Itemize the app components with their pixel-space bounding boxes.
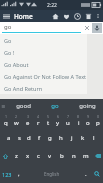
staticText: n <box>72 152 76 160</box>
button[interactable]: History <box>72 10 83 22</box>
staticText: . <box>85 170 87 178</box>
staticText: f <box>38 134 41 142</box>
button[interactable]: Space <box>23 167 81 181</box>
staticText: English <box>44 171 60 177</box>
staticText: d <box>27 134 31 142</box>
staticText: , <box>18 170 20 178</box>
button[interactable]: Delete <box>83 10 94 22</box>
staticText: 7 <box>67 114 70 119</box>
staticText: y <box>56 119 60 127</box>
button[interactable]: Clear query <box>82 22 92 34</box>
button[interactable]: go <box>0 22 82 34</box>
staticText: c <box>37 152 40 160</box>
button[interactable]: Go And Return <box>0 82 87 94</box>
staticText: 2 <box>15 114 18 119</box>
staticText: 6 <box>57 114 60 119</box>
button[interactable]: Go <box>0 34 87 46</box>
button[interactable]: Home <box>50 10 61 22</box>
staticText: z <box>15 152 18 160</box>
button[interactable]: going <box>71 99 103 112</box>
button[interactable]: More options <box>94 10 102 22</box>
staticText: 1 <box>5 114 8 119</box>
button[interactable]: Backspace <box>92 147 103 165</box>
staticText: j <box>71 134 73 142</box>
button[interactable]: 6 <box>53 112 63 129</box>
button[interactable]: k <box>77 129 88 147</box>
button[interactable]: z <box>11 147 22 165</box>
button[interactable]: 3 <box>22 112 33 129</box>
button[interactable]: l <box>88 129 99 147</box>
staticText: g <box>48 134 52 142</box>
staticText: a <box>7 134 11 142</box>
staticText: going <box>79 102 96 110</box>
staticText: Go ! <box>4 49 15 56</box>
staticText: p <box>96 119 100 127</box>
staticText: t <box>47 119 50 127</box>
staticText: 5 <box>47 114 50 119</box>
button[interactable]: d <box>24 129 34 147</box>
button[interactable]: 8 <box>73 112 83 129</box>
button[interactable]: 123 <box>0 165 14 183</box>
staticText: h <box>59 134 63 142</box>
button[interactable]: Shift <box>0 147 11 165</box>
staticText: b <box>60 152 64 160</box>
staticText: k <box>81 134 85 142</box>
staticText: m <box>83 152 89 160</box>
staticText: x <box>26 152 30 160</box>
staticText: 123 <box>2 171 12 178</box>
button[interactable]: 0 <box>93 112 103 129</box>
button[interactable]: 5 <box>43 112 53 129</box>
staticText: 4 <box>37 114 40 119</box>
button[interactable]: Go ! <box>0 46 87 58</box>
staticText: good <box>16 102 31 110</box>
staticText: Go <box>4 37 12 44</box>
button[interactable]: x <box>22 147 33 165</box>
button[interactable]: g <box>44 129 55 147</box>
staticText: go <box>4 23 12 31</box>
button[interactable]: m <box>80 147 92 165</box>
staticText: Go Against Or Not Follow A Text <box>4 73 87 80</box>
staticText: u <box>66 119 70 127</box>
staticText: e <box>26 119 30 127</box>
button[interactable]: a <box>4 129 14 147</box>
button[interactable]: c <box>33 147 44 165</box>
button[interactable]: Comma <box>14 165 23 183</box>
staticText: r <box>37 119 40 127</box>
staticText: 0 <box>97 114 100 119</box>
button[interactable]: h <box>55 129 66 147</box>
button[interactable]: 9 <box>83 112 93 129</box>
staticText: v <box>48 152 52 160</box>
button[interactable]: 4 <box>33 112 43 129</box>
button[interactable]: good <box>7 99 39 112</box>
staticText: ≡ <box>1 103 6 109</box>
staticText: 2:22 <box>47 2 57 9</box>
staticText: Home <box>14 12 33 21</box>
button[interactable]: Period <box>81 165 90 183</box>
staticText: i <box>78 119 80 127</box>
button[interactable]: v <box>44 147 56 165</box>
staticText: s <box>18 134 21 142</box>
staticText: Go And Return <box>4 85 43 92</box>
button[interactable]: s <box>14 129 24 147</box>
button[interactable]: 2 <box>11 112 22 129</box>
button[interactable]: Search <box>90 165 103 183</box>
staticText: go <box>51 102 59 110</box>
button[interactable]: 1 <box>0 112 11 129</box>
button[interactable]: n <box>68 147 80 165</box>
button[interactable]: Favorites <box>61 10 72 22</box>
button[interactable]: Voice search <box>92 23 102 33</box>
button[interactable]: Navigation drawer <box>0 10 12 22</box>
button[interactable]: go <box>39 99 71 112</box>
staticText: 3 <box>27 114 30 119</box>
button[interactable]: f <box>34 129 44 147</box>
button[interactable]: 7 <box>63 112 73 129</box>
staticText: o <box>86 119 90 127</box>
staticText: w <box>14 119 19 127</box>
button[interactable]: Expand suggestions <box>0 99 7 112</box>
button[interactable]: Go Against Or Not Follow A Text <box>0 70 87 82</box>
button[interactable]: Go About <box>0 58 87 70</box>
staticText: 9 <box>87 114 90 119</box>
button[interactable]: j <box>66 129 77 147</box>
button[interactable]: b <box>56 147 68 165</box>
staticText: Go About <box>4 61 29 68</box>
